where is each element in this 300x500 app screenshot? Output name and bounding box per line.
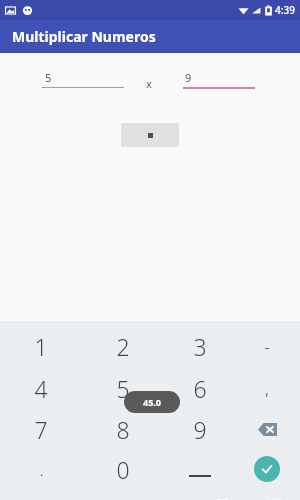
button[interactable]: Space xyxy=(170,449,230,489)
button[interactable]: , xyxy=(237,368,297,408)
staticText: Multiplicar Numeros xyxy=(12,27,156,46)
button[interactable]: Enter xyxy=(237,449,297,489)
button[interactable]: 5 xyxy=(93,368,153,408)
staticText: x xyxy=(146,76,152,91)
staticText: , xyxy=(265,377,269,400)
button[interactable]: - xyxy=(237,326,297,366)
staticText: . xyxy=(39,458,44,481)
button[interactable]: 9 xyxy=(183,70,255,89)
staticText: 5 xyxy=(45,70,52,85)
button[interactable]: 4 xyxy=(11,368,71,408)
button[interactable]: 0 xyxy=(93,449,153,489)
staticText: 45.0 xyxy=(143,396,161,408)
staticText: 2 xyxy=(116,331,130,362)
button[interactable]: Multiplicar xyxy=(121,123,179,147)
staticText: 4 xyxy=(34,373,48,404)
staticText: 3 xyxy=(193,331,207,362)
staticText: 5 xyxy=(116,373,130,404)
staticText: 9 xyxy=(185,70,192,85)
button[interactable]: 8 xyxy=(93,409,153,449)
staticText: 8 xyxy=(116,414,130,445)
staticText: 7 xyxy=(34,414,48,445)
button[interactable]: 2 xyxy=(93,326,153,366)
button[interactable]: 1 xyxy=(11,326,71,366)
button[interactable]: 3 xyxy=(170,326,230,366)
button[interactable]: 5 xyxy=(42,70,124,88)
staticText: 6 xyxy=(193,373,207,404)
button[interactable]: 6 xyxy=(170,368,230,408)
staticText: - xyxy=(264,335,270,358)
staticText: 0 xyxy=(116,454,130,485)
staticText: 1 xyxy=(34,331,48,362)
button[interactable]: 9 xyxy=(170,409,230,449)
staticText: 9 xyxy=(193,414,207,445)
button[interactable]: 7 xyxy=(11,409,71,449)
button[interactable]: . xyxy=(11,449,71,489)
staticText: 4:39 xyxy=(275,3,295,17)
button[interactable]: Backspace xyxy=(237,409,297,449)
